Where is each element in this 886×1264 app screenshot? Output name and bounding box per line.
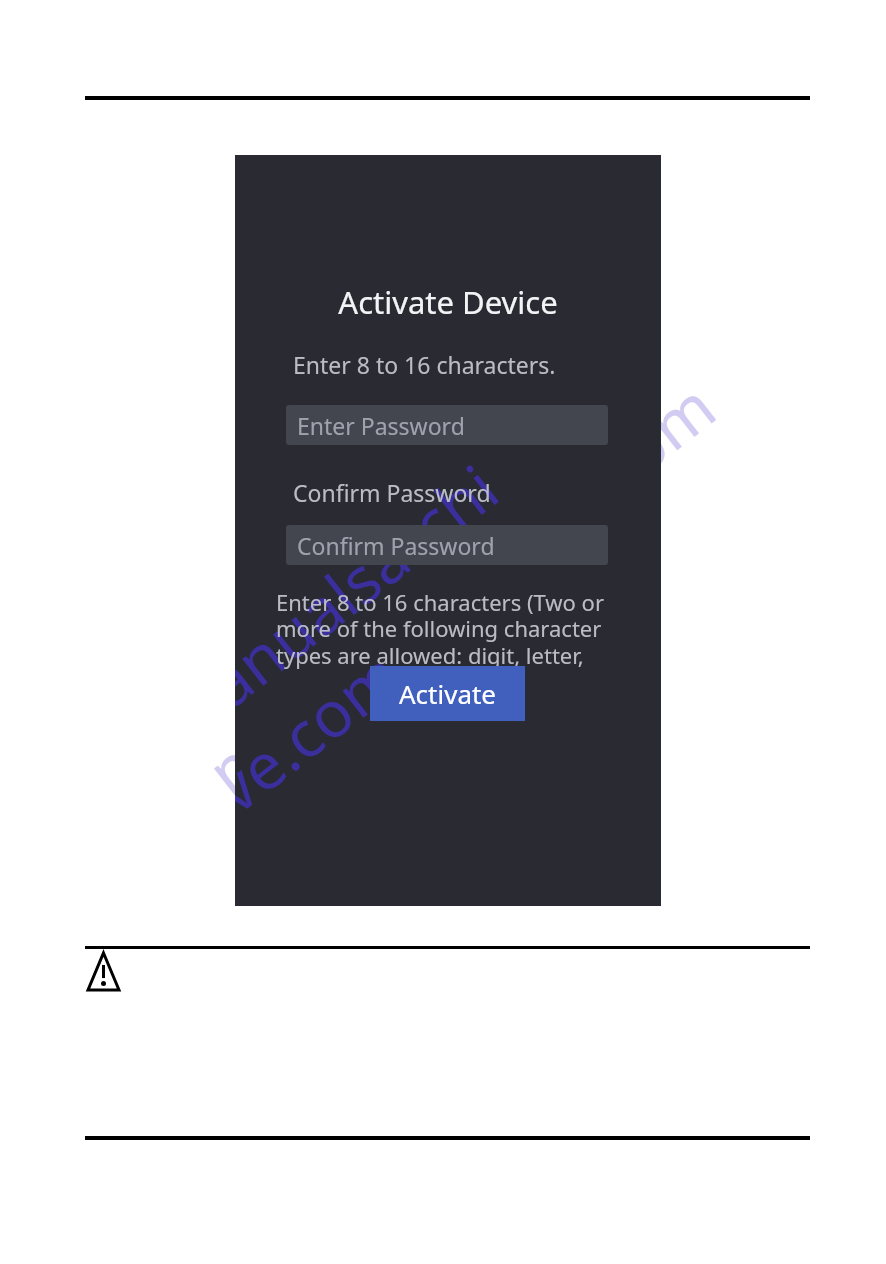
- staticText: manualsarchive.com: [235, 432, 584, 832]
- staticText: Confirm Password: [293, 477, 491, 508]
- staticText: Enter 8 to 16 characters.: [293, 349, 556, 380]
- button[interactable]: Activate: [370, 666, 525, 721]
- staticText: Enter 8 to 16 characters (Two or more of…: [276, 587, 624, 670]
- button[interactable]: Confirm Password: [286, 525, 608, 565]
- other: Caution: [86, 951, 121, 992]
- button[interactable]: Enter Password: [286, 405, 608, 445]
- staticText: manualsarchive.com: [189, 363, 732, 814]
- staticText: Enter Password: [297, 410, 465, 441]
- staticText: Confirm Password: [297, 530, 495, 561]
- staticText: Activate Device: [235, 281, 661, 323]
- staticText: Activate: [399, 676, 497, 711]
